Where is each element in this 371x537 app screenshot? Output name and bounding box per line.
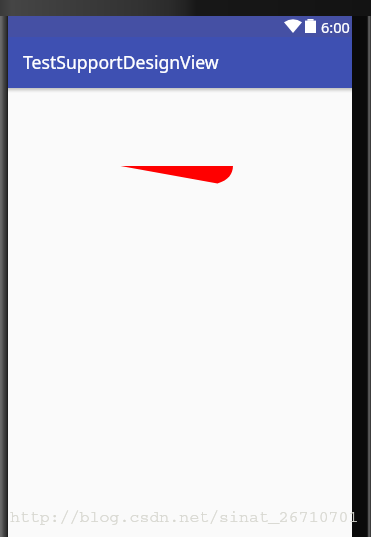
staticText: http://blog.csdn.net/sinat_26710701 — [10, 508, 359, 527]
button[interactable]: Battery level — [305, 19, 316, 33]
button[interactable]: Wi-Fi signal — [284, 19, 302, 33]
staticText: TestSupportDesignView — [23, 50, 219, 74]
button[interactable]: TestSupportDesignView — [8, 37, 352, 88]
staticText: 6:00 — [321, 17, 350, 37]
